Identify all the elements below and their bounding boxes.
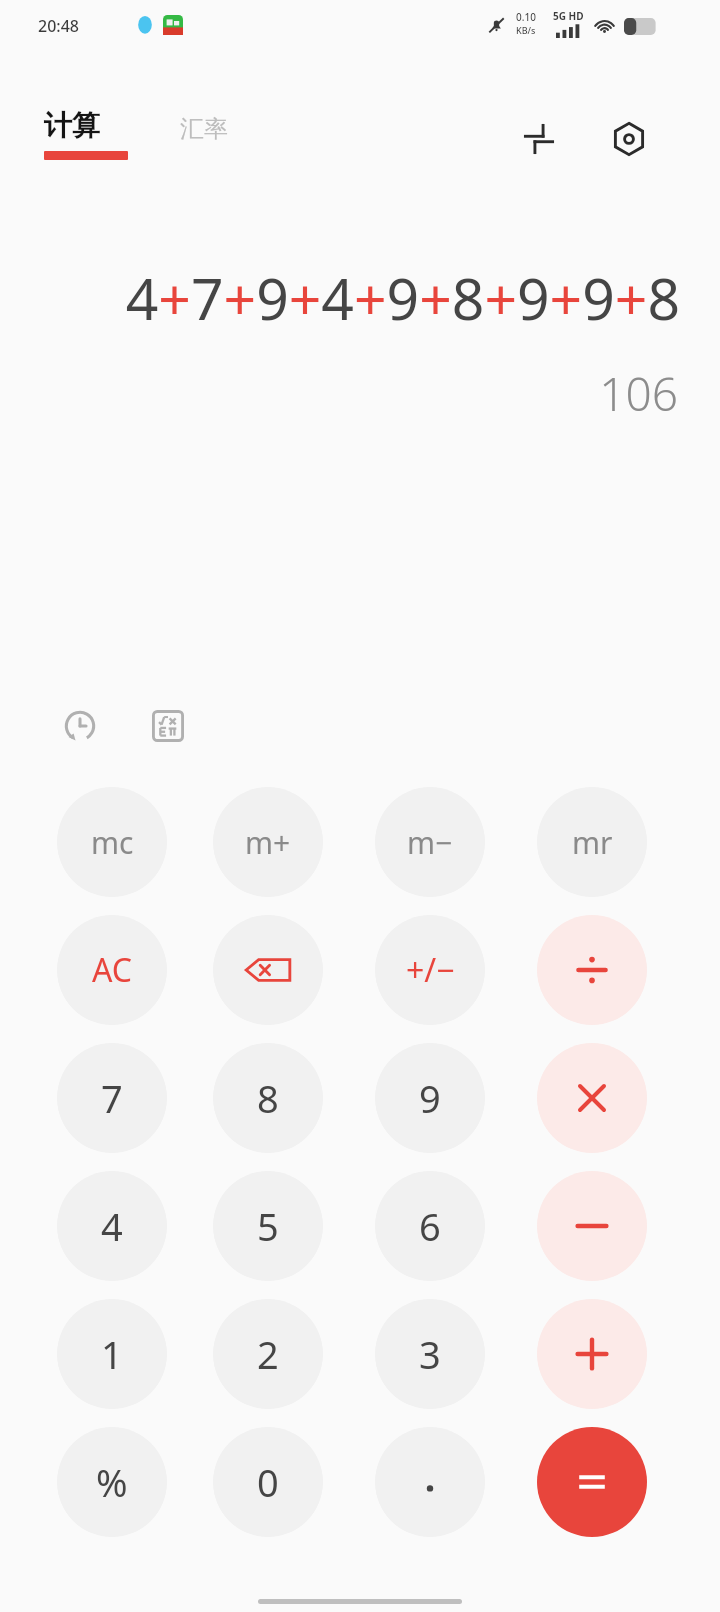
- button[interactable]: 计算: [44, 108, 128, 160]
- staticText: mc: [91, 822, 134, 863]
- staticText: 106: [42, 362, 678, 425]
- button[interactable]: 3: [375, 1299, 485, 1409]
- button[interactable]: Multiply: [537, 1043, 647, 1153]
- button[interactable]: m−: [375, 787, 485, 897]
- button[interactable]: 8: [213, 1043, 323, 1153]
- staticText: AC: [92, 948, 133, 992]
- staticText: 4: [101, 1200, 123, 1252]
- staticText: 5G HD: [553, 9, 584, 23]
- button[interactable]: mr: [537, 787, 647, 897]
- button[interactable]: %: [57, 1427, 167, 1537]
- button[interactable]: 6: [375, 1171, 485, 1281]
- button[interactable]: 4: [57, 1171, 167, 1281]
- staticText: m+: [245, 822, 291, 863]
- staticText: 0.10: [516, 10, 536, 24]
- staticText: +/−: [406, 948, 455, 992]
- button[interactable]: 2: [213, 1299, 323, 1409]
- button[interactable]: Settings: [598, 108, 660, 170]
- button[interactable]: 5: [213, 1171, 323, 1281]
- button[interactable]: Divide: [537, 915, 647, 1025]
- staticText: 1: [101, 1328, 123, 1380]
- staticText: %: [96, 1456, 128, 1508]
- staticText: 9: [419, 1072, 441, 1124]
- button[interactable]: Plus: [537, 1299, 647, 1409]
- button[interactable]: AC: [57, 915, 167, 1025]
- staticText: 6: [419, 1200, 441, 1252]
- button[interactable]: Backspace: [213, 915, 323, 1025]
- button[interactable]: Collapse: [508, 108, 570, 170]
- staticText: 20:48: [38, 15, 79, 37]
- staticText: 计算: [44, 108, 100, 143]
- button[interactable]: History: [52, 698, 108, 754]
- button[interactable]: 9: [375, 1043, 485, 1153]
- button[interactable]: 7: [57, 1043, 167, 1153]
- button[interactable]: mc: [57, 787, 167, 897]
- staticText: 4+7+9+4+9+8+9+9+8: [40, 259, 680, 337]
- button[interactable]: 1: [57, 1299, 167, 1409]
- button[interactable]: +/−: [375, 915, 485, 1025]
- staticText: 5: [257, 1200, 279, 1252]
- staticText: 7: [101, 1072, 123, 1124]
- button[interactable]: Scientific mode: [140, 698, 196, 754]
- staticText: 0: [257, 1456, 279, 1508]
- staticText: KB/s: [516, 24, 536, 36]
- staticText: m−: [407, 822, 453, 863]
- staticText: mr: [572, 822, 613, 863]
- staticText: 3: [419, 1328, 441, 1380]
- staticText: 汇率: [180, 114, 228, 144]
- button[interactable]: Equals: [537, 1427, 647, 1537]
- button[interactable]: m+: [213, 787, 323, 897]
- button[interactable]: Minus: [537, 1171, 647, 1281]
- button[interactable]: 0: [213, 1427, 323, 1537]
- button[interactable]: Decimal point: [375, 1427, 485, 1537]
- button[interactable]: 汇率: [180, 114, 228, 144]
- staticText: 2: [257, 1328, 279, 1380]
- staticText: 8: [257, 1072, 279, 1124]
